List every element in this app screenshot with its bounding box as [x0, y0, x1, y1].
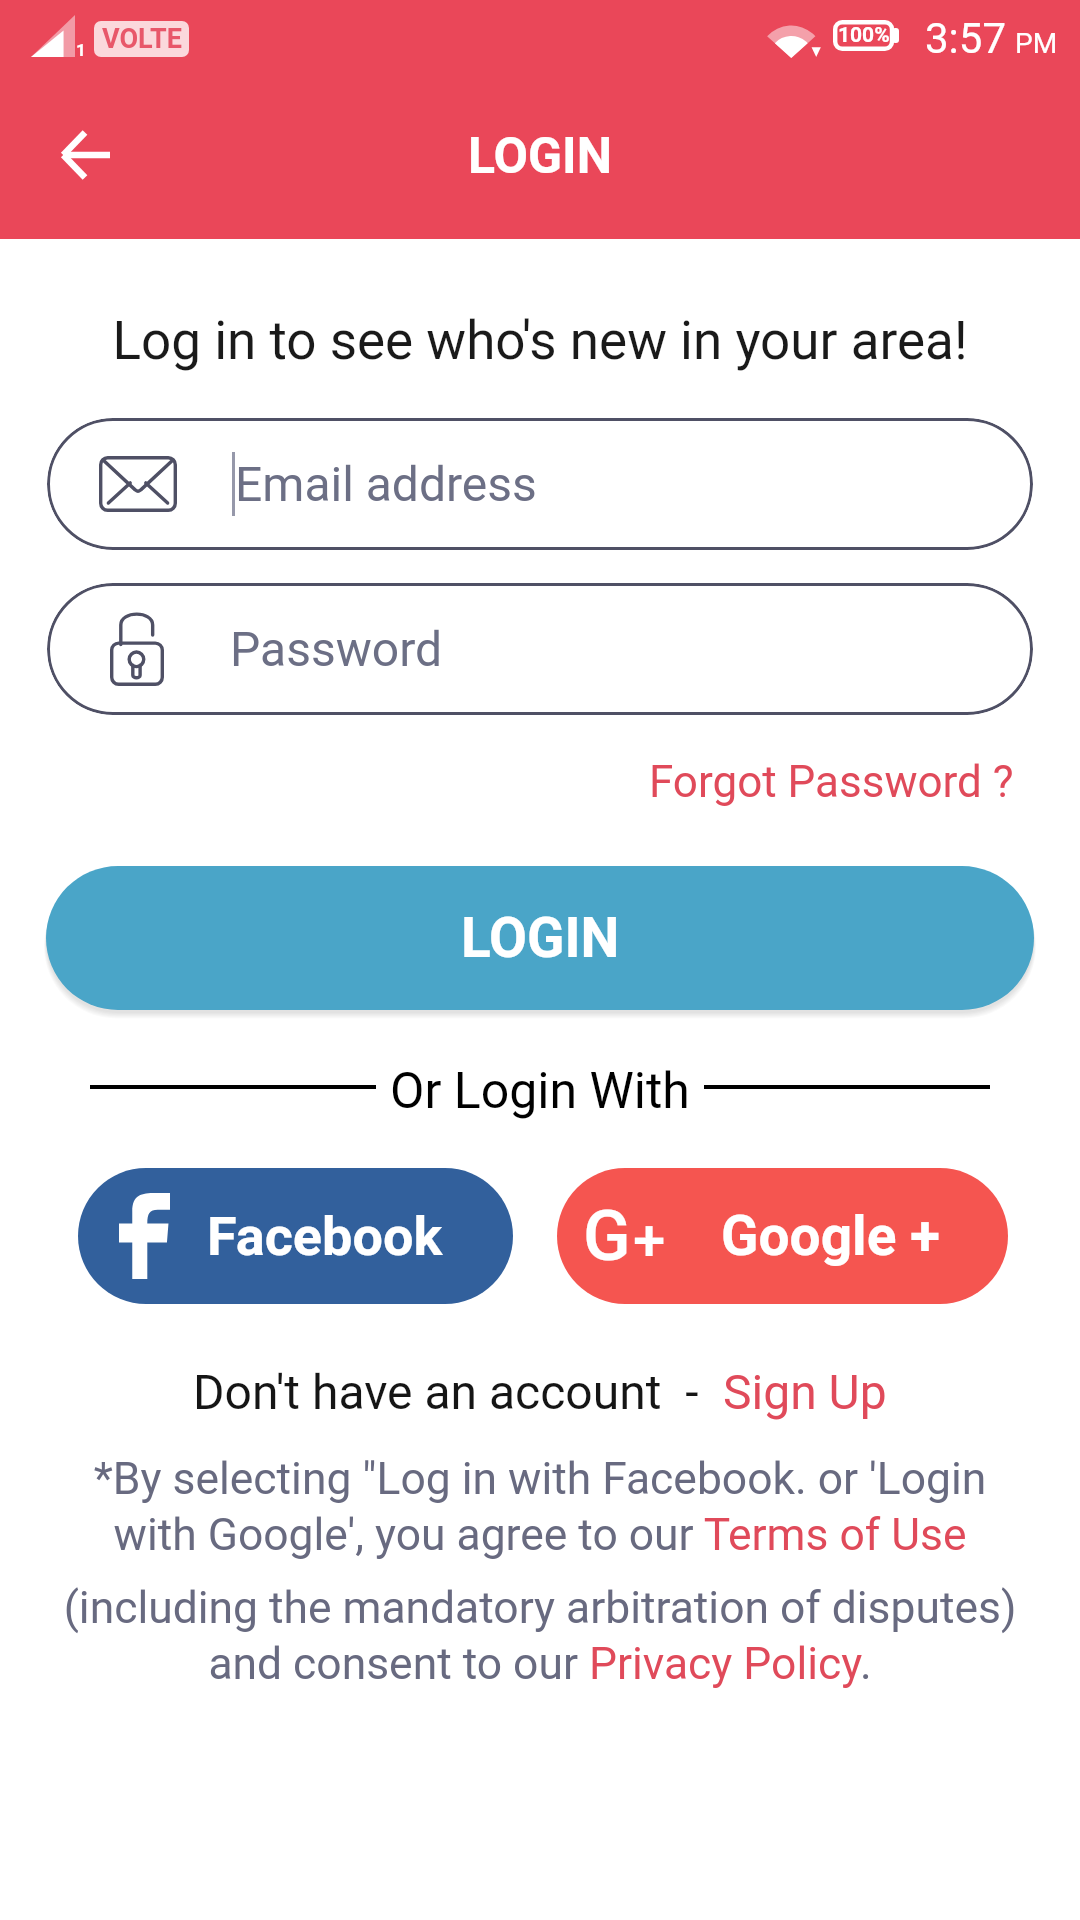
staticText: 3:57 [925, 14, 1006, 63]
button[interactable]: Email address [47, 418, 1033, 550]
staticText: (including the mandatory arbitration of … [30, 1582, 1050, 1689]
staticText: LOGIN [468, 127, 613, 186]
staticText: G [583, 1195, 631, 1277]
staticText: Password [230, 621, 443, 677]
staticText: Don't have an account - [193, 1364, 723, 1420]
staticText: *By selecting "Log in with Facebook. or … [52, 1453, 1028, 1560]
staticText: Facebook [207, 1205, 443, 1268]
staticText: Log in to see who's new in your area! [0, 310, 1080, 372]
button[interactable]: Password [47, 583, 1033, 715]
staticText: Google + [721, 1204, 941, 1268]
button[interactable]: Facebook [78, 1168, 513, 1304]
button[interactable]: G [557, 1168, 1008, 1304]
staticText: Sign Up [723, 1364, 887, 1420]
button[interactable]: Back [34, 104, 136, 206]
staticText: Email address [235, 456, 537, 512]
staticText: VOLTE [102, 23, 182, 55]
button[interactable]: LOGIN [46, 866, 1034, 1010]
staticText: + [633, 1206, 666, 1274]
button[interactable]: Forgot Password ? [649, 756, 1014, 808]
staticText: 1 [76, 40, 86, 60]
staticText: 100% [838, 23, 890, 48]
staticText: LOGIN [461, 906, 620, 970]
button[interactable]: Sign Up [723, 1364, 887, 1420]
staticText: Forgot Password ? [649, 756, 1014, 808]
staticText: Or Login With [390, 1062, 690, 1121]
staticText: PM [1015, 27, 1058, 60]
